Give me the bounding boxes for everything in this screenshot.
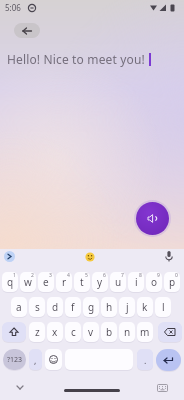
button[interactable] [4, 251, 15, 262]
button[interactable] [45, 349, 62, 370]
staticText: k [142, 300, 148, 314]
staticText: 0 [175, 272, 178, 279]
button[interactable]: q [2, 272, 18, 292]
button[interactable]: i [128, 272, 144, 292]
button[interactable]: n [119, 322, 135, 342]
staticText: n [124, 325, 131, 339]
staticText: 1 [13, 272, 16, 279]
staticText: 2 [31, 272, 34, 279]
button[interactable] [14, 23, 40, 38]
staticText: b [106, 325, 113, 339]
staticText: . [144, 354, 147, 366]
button[interactable] [2, 322, 26, 342]
staticText: u [115, 275, 122, 289]
staticText: g [88, 300, 95, 314]
staticText: d [52, 300, 59, 314]
staticText: l [162, 300, 165, 314]
button[interactable]: v [83, 322, 99, 342]
staticText: y [97, 275, 103, 289]
button[interactable]: ?123 [3, 349, 26, 370]
staticText: 7 [121, 272, 124, 279]
button[interactable]: a [11, 297, 27, 317]
button[interactable]: f [65, 297, 81, 317]
button[interactable]: m [137, 322, 153, 342]
staticText: s [35, 300, 40, 314]
staticText: f [71, 300, 75, 314]
button[interactable]: . [137, 349, 153, 370]
button[interactable]: z [29, 322, 45, 342]
button[interactable]: h [101, 297, 117, 317]
button[interactable]: r [56, 272, 72, 292]
button[interactable]: o [146, 272, 162, 292]
staticText: 3 [49, 272, 52, 279]
button[interactable] [158, 322, 182, 342]
staticText: v [88, 325, 94, 339]
staticText: z [35, 325, 40, 339]
button[interactable]: t [74, 272, 90, 292]
staticText: , [34, 354, 37, 366]
button[interactable]: e [38, 272, 54, 292]
staticText: t [80, 275, 84, 289]
staticText: 5:06 [5, 2, 21, 13]
staticText: i [135, 275, 138, 289]
staticText: m [140, 325, 150, 339]
button[interactable] [136, 202, 169, 235]
staticText: 5 [85, 272, 88, 279]
staticText: ?123 [7, 355, 23, 365]
button[interactable]: x [47, 322, 63, 342]
staticText: c [71, 325, 76, 339]
staticText: q [7, 275, 14, 289]
button[interactable]: l [155, 297, 171, 317]
staticText: Hello! Nice to meet you! [7, 51, 145, 67]
button[interactable] [157, 384, 168, 392]
button[interactable]: b [101, 322, 117, 342]
button[interactable] [16, 385, 24, 390]
staticText: w [24, 275, 32, 289]
staticText: p [169, 275, 176, 289]
button[interactable]: u [110, 272, 126, 292]
button[interactable]: w [20, 272, 36, 292]
button[interactable]: d [47, 297, 63, 317]
button[interactable]: j [119, 297, 135, 317]
button[interactable]: s [29, 297, 45, 317]
staticText: r [62, 275, 67, 289]
staticText: j [126, 300, 129, 314]
button[interactable]: , [29, 349, 42, 370]
staticText: a [16, 300, 22, 314]
staticText: 4 [67, 272, 70, 279]
staticText: 6 [103, 272, 106, 279]
button[interactable]: p [164, 272, 180, 292]
button[interactable]: g [83, 297, 99, 317]
button[interactable]: y [92, 272, 108, 292]
staticText: 9 [157, 272, 160, 279]
staticText: x [52, 325, 58, 339]
button[interactable] [156, 349, 181, 371]
staticText: 8 [139, 272, 142, 279]
button[interactable] [164, 250, 174, 263]
button[interactable]: k [137, 297, 153, 317]
button[interactable]: c [65, 322, 81, 342]
staticText: e [43, 275, 49, 289]
staticText: h [106, 300, 113, 314]
staticText: o [151, 275, 158, 289]
